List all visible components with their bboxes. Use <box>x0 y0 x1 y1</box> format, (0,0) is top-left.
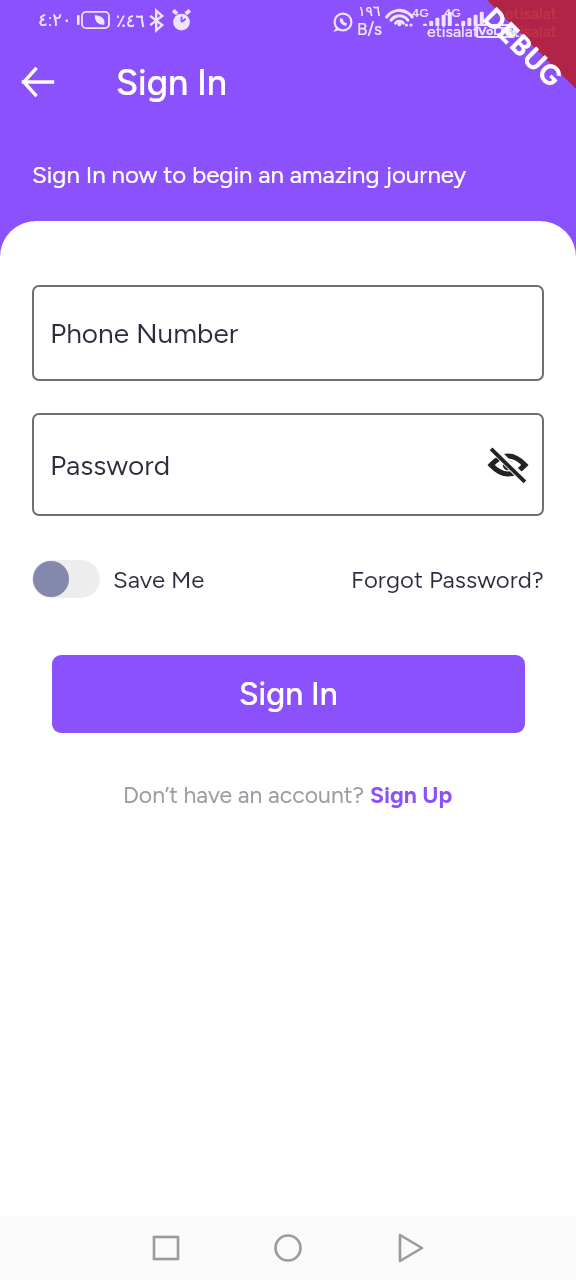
button[interactable]: Sign Up <box>370 781 453 809</box>
staticText: ٪٤٦ <box>116 10 146 31</box>
staticText: ١٩٦ <box>358 3 381 19</box>
staticText: Sign In <box>239 675 338 713</box>
staticText: ٤:٢٠ <box>38 9 72 31</box>
staticText: etisalat <box>505 4 557 23</box>
button[interactable]: Back <box>378 1216 442 1280</box>
staticText: Sign In <box>116 61 228 104</box>
button[interactable]: Password <box>32 413 544 516</box>
button[interactable]: Recent apps <box>134 1216 198 1280</box>
button[interactable]: Save Me <box>32 560 205 598</box>
staticText: etisalat <box>427 22 479 41</box>
staticText: etisalat <box>505 22 557 41</box>
button[interactable]: Home <box>256 1216 320 1280</box>
staticText: VoLTE <box>478 24 513 38</box>
staticText: Don’t have an account? <box>123 781 370 809</box>
button[interactable]: Sign In <box>52 655 525 733</box>
staticText: Save Me <box>113 565 205 594</box>
button[interactable]: Show password <box>490 447 526 483</box>
button[interactable]: Back <box>0 52 76 112</box>
staticText: Sign In now to begin an amazing journey <box>32 160 467 189</box>
staticText: Password <box>50 448 171 482</box>
staticText: DEBUG <box>476 0 570 94</box>
button[interactable]: Forgot Password? <box>351 565 544 594</box>
staticText: 4G <box>412 6 429 20</box>
button[interactable]: Phone Number <box>32 285 544 381</box>
staticText: Phone Number <box>50 316 239 350</box>
staticText: 4G <box>444 6 461 20</box>
staticText: B/s <box>357 19 382 39</box>
